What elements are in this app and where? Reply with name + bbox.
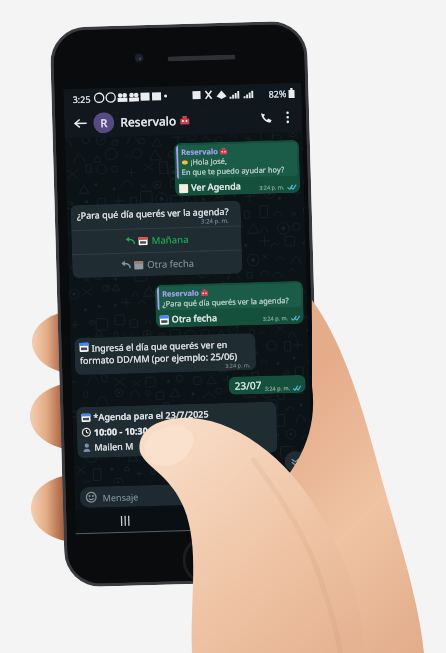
staticText: 3:24 p. m. [259,183,285,191]
staticText: Reservalo [181,146,218,157]
button[interactable]: Voice message [287,481,309,502]
staticText: Reservalo [120,112,177,130]
staticText: Ingresá el día que querés ver en [91,338,228,354]
button[interactable]: Mañana [71,226,242,254]
staticText: 3:25 [72,93,91,105]
button[interactable]: Home [181,506,208,530]
button[interactable]: Back [70,113,91,133]
button[interactable]: Voice call [256,107,276,128]
staticText: formato DD/MM (por ejemplo: 25/06) [80,350,238,366]
staticText: Mensaje [103,490,139,503]
button[interactable]: Reservalo [174,140,300,196]
staticText: Ver Agenda [191,179,241,193]
staticText: ¿Para qué día querés ver la agenda? [77,205,229,221]
button[interactable]: Recent apps [111,508,138,532]
staticText: 3:24 p. m. [263,314,289,322]
staticText: 3:24 p. m. [201,217,229,226]
staticText: R [100,115,107,130]
button[interactable]: More options [279,109,295,125]
button[interactable]: Reservalo [120,110,256,130]
button[interactable]: Otra fecha [72,250,243,278]
staticText: Reservalo [162,288,199,299]
staticText: 23/07 [234,378,262,393]
staticText: *Agenda para el 23/7/2025 [93,407,210,423]
button[interactable]: Scroll to bottom [284,451,306,472]
staticText: 10:00 - 10:30 [94,424,148,438]
staticText: ¿Para qué día querés ver la agenda? [162,295,289,309]
staticText: 82% [268,87,287,100]
staticText: Otra fecha [172,311,218,324]
staticText: Mailen M [94,440,133,453]
staticText: En que te puedo ayudar hoy? [181,164,285,177]
staticText: Otra fecha [147,257,194,271]
staticText: ¡Hola José, [190,156,228,167]
button[interactable]: Mensaje [79,481,284,508]
staticText: 3:24 p. m. [265,384,291,392]
staticText: 3:24 p. m. [225,361,251,369]
staticText: Mañana [151,233,189,247]
